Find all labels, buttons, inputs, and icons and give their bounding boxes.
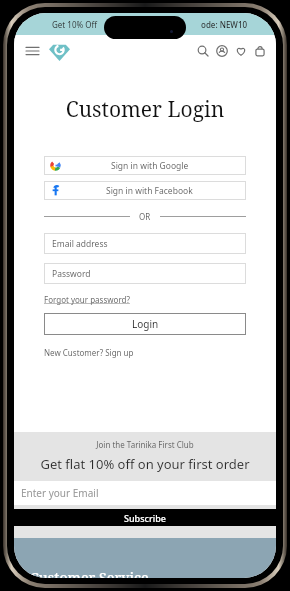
- staticText: Password: [52, 268, 91, 280]
- staticText: ode: NEW10: [201, 19, 248, 30]
- staticText: Get flat 10% off on your first order: [14, 455, 276, 473]
- button[interactable]: Email address: [44, 233, 246, 254]
- staticText: Customer Service: [30, 568, 149, 578]
- staticText: Sign in with Facebook: [106, 185, 193, 197]
- button[interactable]: Home: [47, 39, 71, 63]
- button[interactable]: Sign in with Facebook: [44, 181, 246, 200]
- button[interactable]: Login: [44, 313, 246, 335]
- staticText: Get 10% Off: [52, 19, 97, 30]
- button[interactable]: Account: [214, 43, 230, 59]
- button[interactable]: Subscribe: [14, 509, 276, 526]
- button[interactable]: Search: [195, 43, 211, 59]
- button[interactable]: Forgot your password?: [44, 294, 130, 305]
- button[interactable]: Enter your Email: [14, 481, 276, 505]
- staticText: Join the Tarinika First Club: [14, 439, 276, 450]
- button[interactable]: Cart: [252, 43, 268, 59]
- button[interactable]: Wishlist: [233, 43, 249, 59]
- staticText: Enter your Email: [21, 486, 99, 500]
- button[interactable]: Menu: [21, 40, 43, 62]
- staticText: New Customer? Sign up: [44, 347, 134, 358]
- button[interactable]: Password: [44, 263, 246, 284]
- staticText: Email address: [52, 238, 108, 250]
- staticText: Subscribe: [124, 512, 166, 524]
- staticText: Forgot your password?: [44, 294, 130, 305]
- staticText: OR: [139, 211, 151, 222]
- button[interactable]: Sign in with Google: [44, 156, 246, 175]
- staticText: Sign in with Google: [111, 160, 189, 172]
- button[interactable]: New Customer? Sign up: [44, 347, 134, 358]
- staticText: Customer Login: [44, 95, 246, 124]
- staticText: Login: [132, 317, 159, 331]
